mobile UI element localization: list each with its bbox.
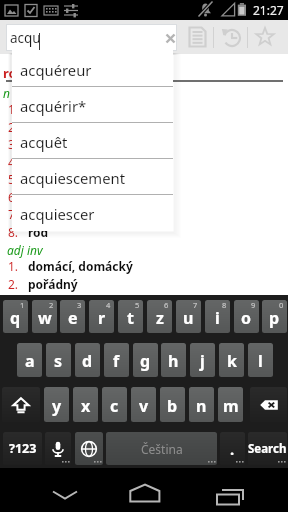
button[interactable]: i xyxy=(205,300,230,333)
button[interactable]: Recents xyxy=(191,468,259,512)
button[interactable]: l xyxy=(248,343,273,377)
staticText: 7. xyxy=(8,206,19,222)
button[interactable]: b xyxy=(160,387,185,422)
button[interactable]: Voice input xyxy=(45,432,71,465)
staticText: x xyxy=(81,395,91,417)
button[interactable]: c xyxy=(102,387,127,422)
staticText: adj inv xyxy=(7,242,43,258)
button[interactable]: y xyxy=(44,387,69,422)
staticText: f xyxy=(113,350,120,372)
staticText: k xyxy=(227,350,237,372)
button[interactable]: k xyxy=(219,343,244,377)
button[interactable]: acquiescement xyxy=(12,159,173,195)
staticText: kotel xyxy=(28,136,59,152)
staticText: o xyxy=(241,307,252,329)
button[interactable]: Shift xyxy=(2,387,40,422)
staticText: n xyxy=(196,395,207,417)
button[interactable]: Hide keyboard xyxy=(31,468,99,512)
button[interactable]: Space xyxy=(106,432,217,465)
staticText: 9 xyxy=(251,300,256,310)
staticText: 8 xyxy=(222,300,227,310)
button[interactable]: w xyxy=(32,300,57,333)
staticText: h xyxy=(168,350,179,372)
button[interactable]: m xyxy=(218,387,243,422)
staticText: l xyxy=(258,350,263,372)
staticText: i xyxy=(215,307,220,329)
staticText: g xyxy=(140,350,151,372)
staticText: 3. xyxy=(8,136,19,152)
staticText: 3 xyxy=(77,300,82,310)
staticText: q xyxy=(10,307,21,329)
button[interactable]: h xyxy=(161,343,186,377)
button[interactable]: t xyxy=(118,300,143,333)
staticText: 1 xyxy=(20,300,25,310)
button[interactable]: Home xyxy=(111,468,179,512)
button[interactable]: acquêt xyxy=(12,123,173,159)
staticText: 21:27 xyxy=(253,2,284,18)
staticText: 6 xyxy=(164,300,169,310)
button[interactable]: Text xyxy=(180,20,214,54)
staticText: acqu xyxy=(10,29,41,47)
staticText: 2 xyxy=(49,300,54,310)
staticText: v xyxy=(139,395,149,417)
button[interactable]: Favorites xyxy=(248,20,282,54)
button[interactable]: r xyxy=(89,300,114,333)
button[interactable]: History xyxy=(214,20,248,54)
staticText: j xyxy=(200,350,205,372)
button[interactable]: z xyxy=(147,300,172,333)
button[interactable]: acqu xyxy=(6,24,177,51)
staticText: 1. xyxy=(8,258,19,274)
staticText: acquêt xyxy=(20,132,68,152)
staticText: n xyxy=(3,85,10,101)
button[interactable]: Change language xyxy=(75,432,103,465)
staticText: 0 xyxy=(279,300,284,310)
button[interactable]: s xyxy=(46,343,71,377)
button[interactable]: e xyxy=(60,300,85,333)
button[interactable]: g xyxy=(133,343,158,377)
staticText: Čeština xyxy=(141,441,183,457)
button[interactable]: acquérir* xyxy=(12,87,173,123)
button[interactable]: x xyxy=(73,387,98,422)
staticText: 7 xyxy=(193,300,198,310)
staticText: 5. xyxy=(8,171,19,187)
button[interactable]: j xyxy=(190,343,215,377)
staticText: nádrž xyxy=(28,154,62,170)
staticText: 6. xyxy=(8,189,19,205)
button[interactable]: f xyxy=(104,343,129,377)
staticText: p xyxy=(269,307,280,329)
button[interactable]: n xyxy=(189,387,214,422)
button[interactable]: a xyxy=(17,343,42,377)
button[interactable]: Clear xyxy=(158,26,182,50)
button[interactable]: Search xyxy=(248,432,287,465)
staticText: domácí, domácký xyxy=(28,258,133,274)
staticText: 2. xyxy=(8,119,19,135)
staticText: truhla xyxy=(28,206,65,222)
button[interactable]: v xyxy=(131,387,156,422)
staticText: c xyxy=(110,395,119,417)
staticText: e xyxy=(68,307,78,329)
staticText: z xyxy=(156,307,164,329)
staticText: soudek, sud xyxy=(28,101,100,117)
staticText: y xyxy=(52,395,62,417)
button[interactable]: acquiescer xyxy=(12,195,173,231)
staticText: rod xyxy=(3,64,25,82)
button[interactable]: Period xyxy=(220,432,245,465)
staticText: káď xyxy=(28,119,51,135)
button[interactable]: Symbols xyxy=(3,432,42,465)
staticText: 4. xyxy=(8,154,19,170)
staticText: acquiescer xyxy=(20,204,95,224)
staticText: acquiescement xyxy=(20,168,126,188)
staticText: . xyxy=(230,439,235,459)
button[interactable]: acquéreur xyxy=(12,50,173,87)
button[interactable]: Backspace xyxy=(250,387,287,422)
staticText: b xyxy=(167,395,178,417)
staticText: acquérir* xyxy=(20,96,87,116)
button[interactable]: o xyxy=(234,300,259,333)
button[interactable]: d xyxy=(75,343,100,377)
staticText: t xyxy=(127,307,134,329)
staticText: 8. xyxy=(8,224,19,240)
staticText: w xyxy=(38,307,52,329)
button[interactable]: p xyxy=(262,300,287,333)
button[interactable]: u xyxy=(176,300,201,333)
button[interactable]: q xyxy=(3,300,28,333)
